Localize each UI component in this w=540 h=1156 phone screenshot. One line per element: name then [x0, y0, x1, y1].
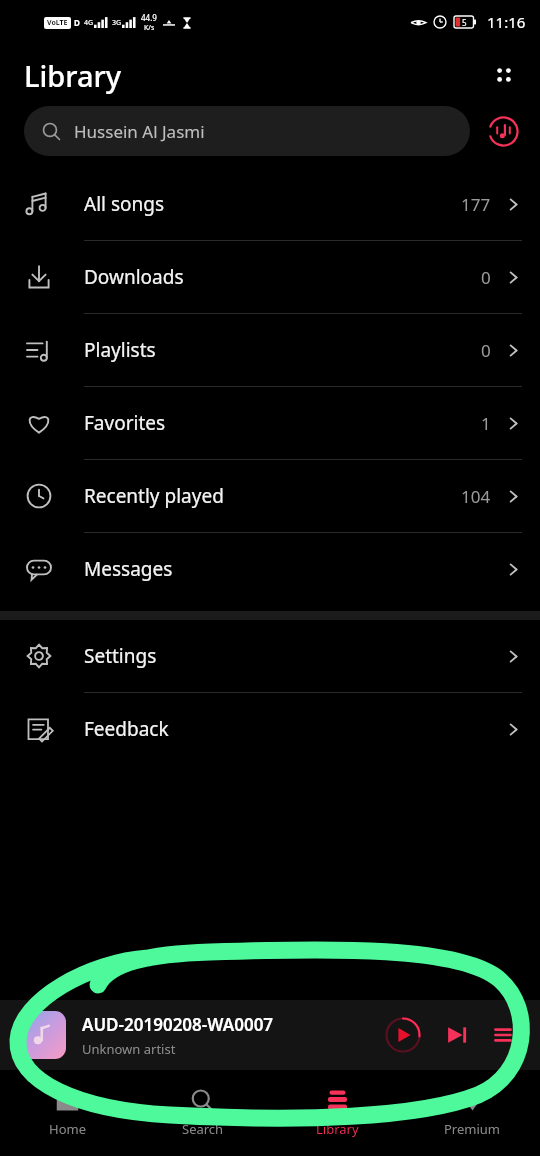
staticText: Favorites [84, 410, 481, 436]
staticText: Feedback [84, 716, 505, 742]
staticText: K/s [144, 23, 155, 33]
staticText: Playlists [84, 337, 481, 363]
staticText: 3G [112, 18, 122, 28]
button[interactable]: Identify song [482, 110, 524, 152]
button[interactable]: Next track [436, 1014, 478, 1056]
staticText: VoLTE [47, 18, 68, 28]
button[interactable]: Playlists [0, 314, 540, 386]
staticText: Hussein Al Jasmi [74, 120, 205, 143]
staticText: 5 [462, 17, 467, 28]
button[interactable]: Premium [405, 1070, 540, 1156]
staticText: Unknown artist [82, 1040, 176, 1058]
button[interactable]: Search [135, 1070, 270, 1156]
button[interactable]: Play queue [484, 1016, 522, 1054]
staticText: 1 [481, 412, 491, 435]
staticText: All songs [84, 191, 461, 217]
button[interactable]: Feedback [0, 693, 540, 765]
button[interactable]: Play [380, 1012, 426, 1058]
button[interactable]: Settings [0, 620, 540, 692]
button[interactable]: Home [0, 1070, 135, 1156]
staticText: 44.9 [141, 12, 157, 23]
button[interactable]: Messages [0, 533, 540, 605]
button[interactable]: AUD-20190208-WA0007 [0, 1000, 540, 1070]
staticText: Library [24, 56, 122, 95]
staticText: 11:16 [487, 12, 526, 32]
button[interactable]: Recently played [0, 460, 540, 532]
staticText: AUD-20190208-WA0007 [82, 1013, 274, 1036]
staticText: Search [182, 1120, 224, 1138]
staticText: Downloads [84, 264, 481, 290]
staticText: Messages [84, 556, 505, 582]
staticText: Recently played [84, 483, 461, 509]
button[interactable]: All songs [0, 168, 540, 240]
staticText: D [74, 17, 80, 28]
staticText: 104 [461, 485, 491, 508]
button[interactable]: Hussein Al Jasmi [24, 106, 470, 156]
staticText: Premium [444, 1120, 501, 1138]
staticText: 0 [481, 266, 491, 289]
staticText: 4G [84, 18, 94, 28]
staticText: 177 [461, 193, 491, 216]
staticText: Library [316, 1120, 359, 1138]
button[interactable]: Downloads [0, 241, 540, 313]
button[interactable]: More options [482, 53, 526, 97]
staticText: 0 [481, 339, 491, 362]
staticText: Settings [84, 643, 505, 669]
button[interactable]: Favorites [0, 387, 540, 459]
button[interactable]: Library [270, 1070, 405, 1156]
staticText: Home [49, 1120, 86, 1138]
